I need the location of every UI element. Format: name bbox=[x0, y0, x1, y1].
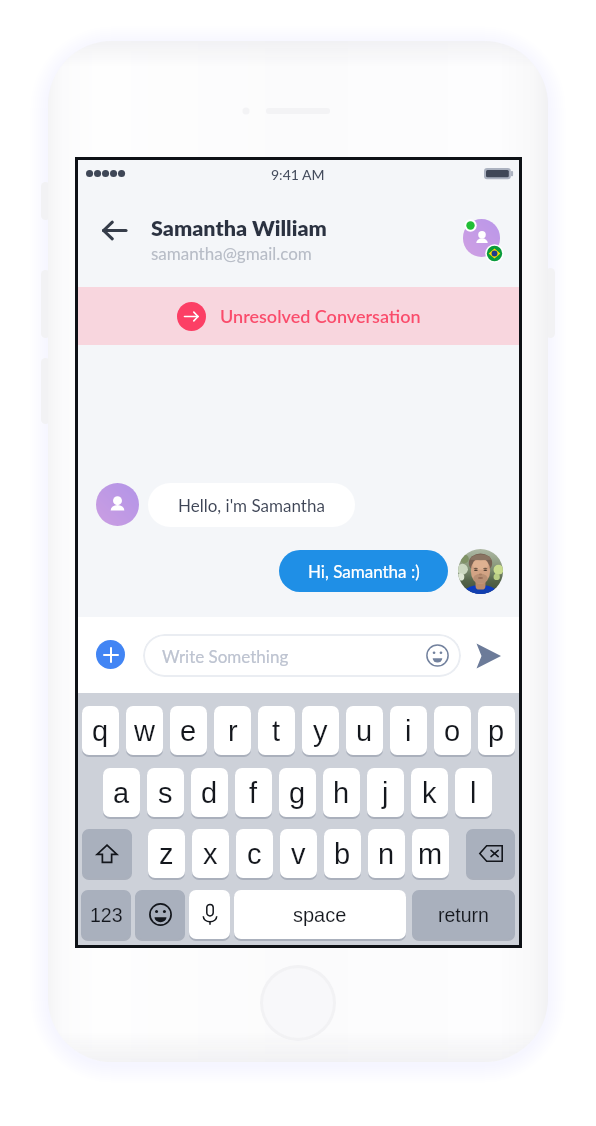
staticText: Samantha William bbox=[151, 215, 327, 241]
button[interactable]: Hi, Samantha :) bbox=[279, 550, 448, 592]
staticText: a bbox=[113, 777, 130, 809]
staticText: q bbox=[92, 715, 109, 747]
staticText: d bbox=[201, 777, 218, 809]
button[interactable]: q bbox=[82, 706, 119, 755]
button[interactable]: t bbox=[258, 706, 295, 755]
button[interactable]: Backspace bbox=[466, 829, 515, 878]
button[interactable]: o bbox=[434, 706, 471, 755]
button[interactable]: Unresolved Conversation bbox=[78, 287, 519, 345]
staticText: Hi, Samantha :) bbox=[308, 561, 420, 581]
staticText: z bbox=[159, 838, 174, 870]
button[interactable]: Write Something bbox=[143, 634, 461, 677]
button[interactable]: w bbox=[126, 706, 163, 755]
button[interactable]: f bbox=[235, 768, 272, 817]
button[interactable]: y bbox=[302, 706, 339, 755]
button[interactable]: Add attachment bbox=[96, 640, 125, 669]
staticText: h bbox=[333, 777, 350, 809]
staticText: return bbox=[438, 904, 489, 926]
button[interactable]: 123 bbox=[81, 890, 131, 939]
button[interactable]: d bbox=[191, 768, 228, 817]
staticText: e bbox=[180, 715, 197, 747]
button[interactable]: h bbox=[323, 768, 360, 817]
button[interactable]: Microphone bbox=[189, 890, 230, 939]
button[interactable]: b bbox=[324, 829, 361, 878]
button[interactable]: r bbox=[214, 706, 251, 755]
staticText: o bbox=[444, 715, 461, 747]
button[interactable]: n bbox=[368, 829, 405, 878]
button[interactable]: x bbox=[192, 829, 229, 878]
button[interactable]: space bbox=[234, 890, 406, 939]
staticText: r bbox=[228, 715, 238, 747]
button[interactable]: z bbox=[148, 829, 185, 878]
staticText: k bbox=[422, 777, 437, 809]
staticText: t bbox=[272, 715, 281, 747]
button[interactable]: Emoji bbox=[135, 890, 185, 939]
staticText: g bbox=[289, 777, 306, 809]
staticText: p bbox=[488, 715, 505, 747]
staticText: space bbox=[293, 904, 347, 926]
button[interactable]: c bbox=[236, 829, 273, 878]
button[interactable]: v bbox=[280, 829, 317, 878]
staticText: Hello, i'm Samantha bbox=[178, 495, 325, 515]
staticText: m bbox=[418, 838, 443, 870]
button[interactable]: i bbox=[390, 706, 427, 755]
staticText: n bbox=[378, 838, 395, 870]
staticText: l bbox=[470, 777, 477, 809]
staticText: f bbox=[249, 777, 258, 809]
staticText: 9:41 AM bbox=[271, 166, 325, 183]
staticText: Unresolved Conversation bbox=[220, 305, 421, 327]
button[interactable]: l bbox=[455, 768, 492, 817]
button[interactable]: u bbox=[346, 706, 383, 755]
button[interactable]: k bbox=[411, 768, 448, 817]
button[interactable]: s bbox=[147, 768, 184, 817]
staticText: y bbox=[313, 715, 328, 747]
staticText: s bbox=[158, 777, 173, 809]
staticText: 123 bbox=[90, 904, 123, 926]
staticText: j bbox=[382, 777, 389, 809]
staticText: samantha@gmail.com bbox=[151, 243, 312, 263]
staticText: Write Something bbox=[162, 646, 426, 666]
button[interactable]: j bbox=[367, 768, 404, 817]
button[interactable]: return bbox=[412, 890, 515, 939]
button[interactable]: Send bbox=[473, 640, 503, 671]
button[interactable]: m bbox=[412, 829, 449, 878]
staticText: b bbox=[334, 838, 351, 870]
button[interactable]: p bbox=[478, 706, 515, 755]
staticText: i bbox=[405, 715, 412, 747]
staticText: c bbox=[247, 838, 262, 870]
button[interactable]: Shift bbox=[82, 829, 132, 878]
staticText: v bbox=[291, 838, 306, 870]
staticText: u bbox=[356, 715, 373, 747]
button[interactable]: g bbox=[279, 768, 316, 817]
button[interactable]: Hello, i'm Samantha bbox=[148, 483, 355, 527]
button[interactable]: e bbox=[170, 706, 207, 755]
staticText: x bbox=[203, 838, 218, 870]
button[interactable]: a bbox=[103, 768, 140, 817]
button[interactable]: Back bbox=[97, 215, 131, 245]
staticText: w bbox=[134, 715, 155, 747]
